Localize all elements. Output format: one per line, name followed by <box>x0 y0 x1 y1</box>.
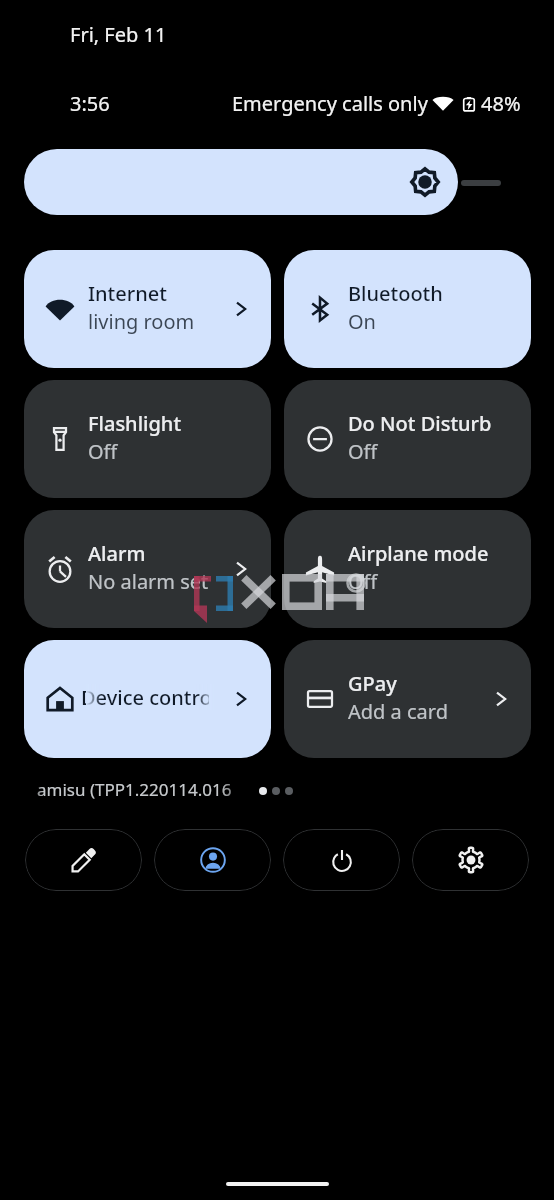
staticText: On <box>348 308 376 335</box>
button[interactable]: Brightness <box>24 149 458 215</box>
staticText: Fri, Feb 11 <box>70 21 167 48</box>
button[interactable]: Internet <box>24 250 271 368</box>
staticText: No alarm set <box>88 568 209 595</box>
button[interactable]: Alarm <box>24 510 271 628</box>
button[interactable]: Do Not Disturb <box>284 380 531 498</box>
button[interactable]: Flashlight <box>24 380 271 498</box>
staticText: Flashlight <box>88 410 182 437</box>
button[interactable]: User account <box>154 829 271 891</box>
staticText: Emergency calls only <box>232 90 428 117</box>
staticText: living room <box>88 308 195 335</box>
button[interactable]: GPay <box>284 640 531 758</box>
staticText: Off <box>348 568 378 595</box>
button[interactable]: Bluetooth <box>284 250 531 368</box>
button[interactable]: Airplane mode <box>284 510 531 628</box>
staticText: Alarm <box>88 540 146 567</box>
button[interactable]: Edit tiles <box>25 829 142 891</box>
staticText: GPay <box>348 670 397 697</box>
staticText: 48% <box>481 90 521 117</box>
staticText: 3:56 <box>70 90 110 117</box>
staticText: Off <box>348 438 378 465</box>
staticText: Internet <box>88 280 167 307</box>
staticText: Do Not Disturb <box>348 410 492 437</box>
staticText: amisu (TPP1.220114.016 <box>37 778 232 801</box>
staticText: Add a card <box>348 698 448 725</box>
staticText: Bluetooth <box>348 280 443 307</box>
staticText: Device controls <box>81 684 209 710</box>
staticText: Off <box>88 438 118 465</box>
staticText: Airplane mode <box>348 540 489 567</box>
button[interactable]: Settings <box>412 829 529 891</box>
button[interactable]: Power <box>283 829 400 891</box>
button[interactable]: Device controls <box>24 640 271 758</box>
